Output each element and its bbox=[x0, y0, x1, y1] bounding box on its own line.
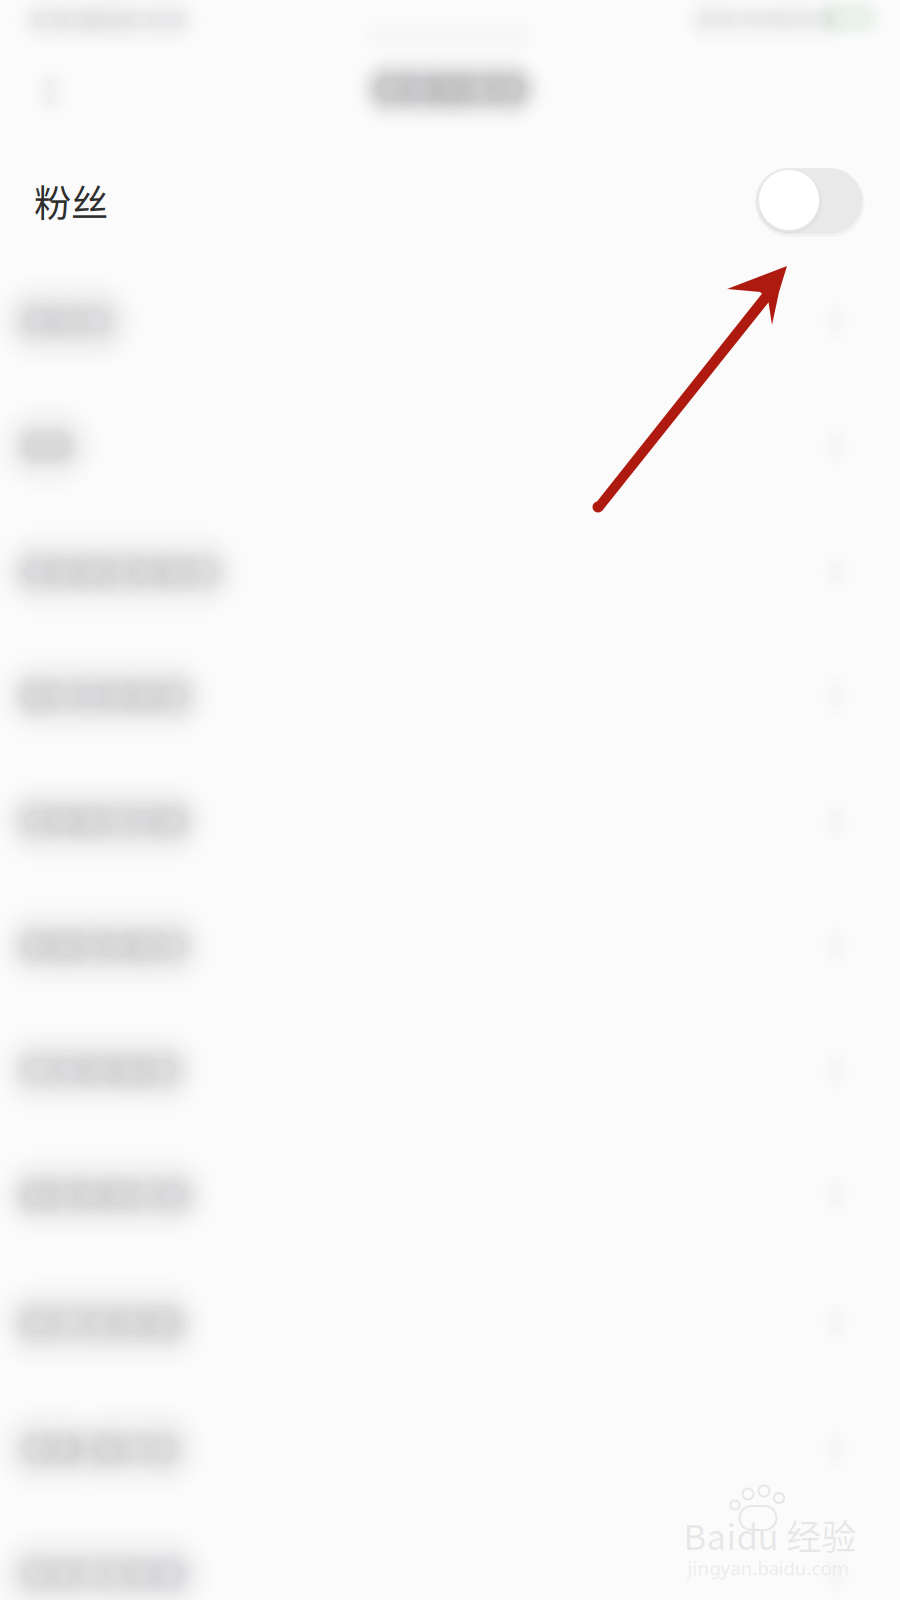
button[interactable] bbox=[0, 884, 900, 1008]
button[interactable] bbox=[0, 1387, 900, 1511]
button[interactable] bbox=[0, 259, 900, 383]
staticText: 粉丝 bbox=[34, 174, 108, 228]
staticText: jingyan.baidu.com bbox=[687, 1555, 848, 1581]
button[interactable] bbox=[0, 384, 900, 508]
button[interactable]: 粉丝 bbox=[0, 136, 900, 266]
staticText: Baidu 经验 bbox=[683, 1510, 856, 1560]
button[interactable] bbox=[0, 759, 900, 883]
button[interactable] bbox=[0, 510, 900, 634]
button[interactable] bbox=[0, 634, 900, 758]
button[interactable] bbox=[0, 1512, 900, 1600]
button[interactable] bbox=[0, 1008, 900, 1132]
button[interactable] bbox=[0, 1261, 900, 1385]
button[interactable] bbox=[0, 1133, 900, 1257]
